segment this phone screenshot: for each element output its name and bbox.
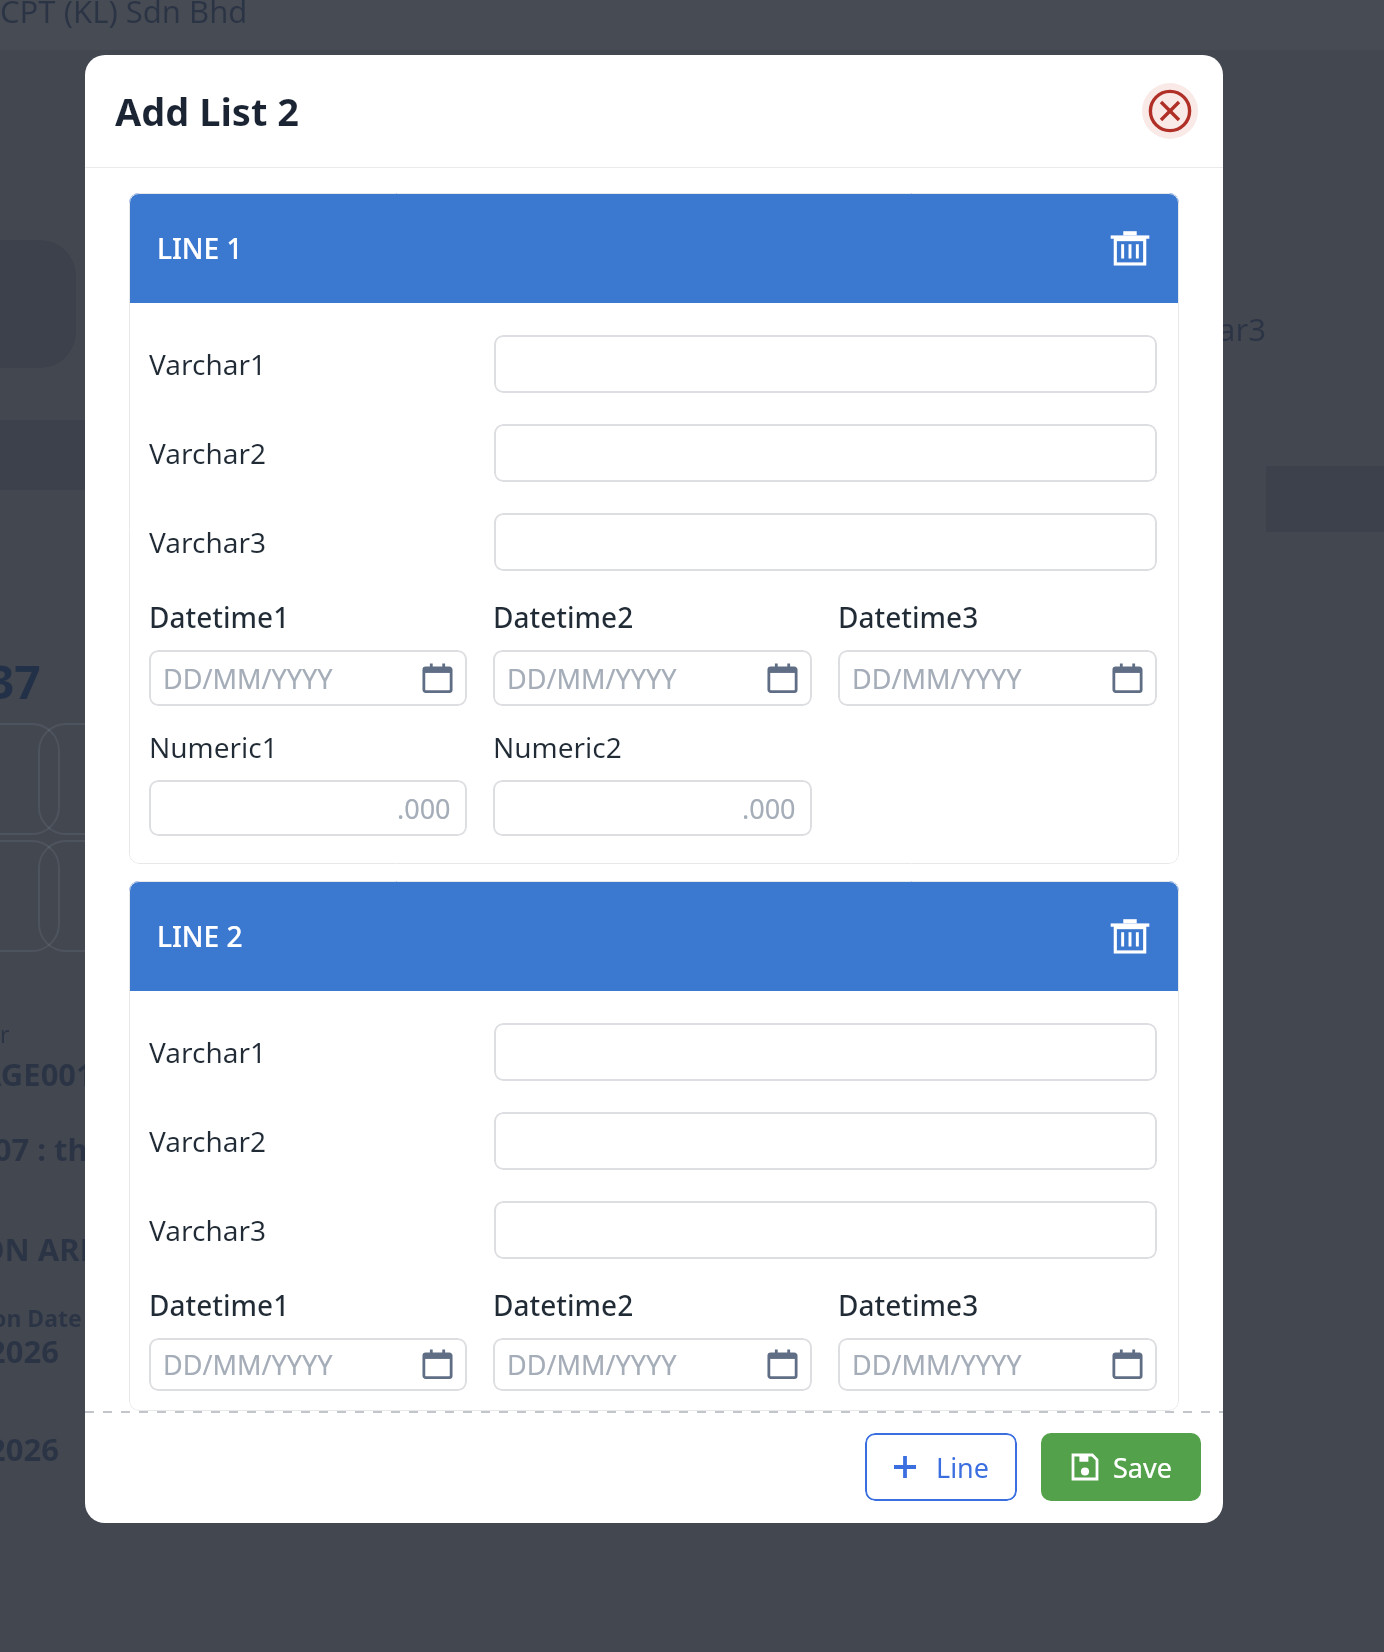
staticText: on Date xyxy=(0,1302,82,1333)
button[interactable] xyxy=(494,424,1157,482)
button[interactable]: DD/MM/YYYY xyxy=(493,650,812,706)
staticText: DD/MM/YYYY xyxy=(852,1346,1022,1383)
staticText: AGE001 xyxy=(0,1053,94,1095)
staticText: CPT (KL) Sdn Bhd xyxy=(0,0,248,32)
staticText: 2026 xyxy=(0,1330,59,1372)
staticText: DD/MM/YYYY xyxy=(507,660,677,697)
staticText: .000 xyxy=(742,790,796,827)
staticText: Save xyxy=(1113,1449,1172,1486)
button[interactable] xyxy=(494,1201,1157,1259)
staticText: Datetime3 xyxy=(838,598,979,636)
staticText: Line xyxy=(936,1449,990,1486)
button[interactable]: Close xyxy=(1142,83,1198,139)
button[interactable]: .000 xyxy=(493,780,812,836)
button[interactable]: Line xyxy=(865,1433,1017,1501)
staticText: DD/MM/YYYY xyxy=(507,1346,677,1383)
staticText: DD/MM/YYYY xyxy=(163,660,333,697)
button[interactable] xyxy=(494,1023,1157,1081)
staticText: r xyxy=(0,1018,10,1049)
staticText: Add List 2 xyxy=(115,85,299,137)
button[interactable]: Delete LINE 1 xyxy=(1109,227,1151,269)
staticText: Datetime1 xyxy=(149,1286,290,1324)
staticText: Varchar1 xyxy=(149,345,494,383)
staticText: DD/MM/YYYY xyxy=(163,1346,333,1383)
staticText: DD/MM/YYYY xyxy=(852,660,1022,697)
button[interactable]: DD/MM/YYYY xyxy=(838,650,1157,706)
staticText: Varchar1 xyxy=(149,1033,494,1071)
staticText: Numeric1 xyxy=(149,728,278,766)
staticText: Datetime3 xyxy=(838,1286,979,1324)
staticText: 37 xyxy=(0,650,41,713)
button[interactable] xyxy=(494,335,1157,393)
staticText: Numeric2 xyxy=(493,728,622,766)
button[interactable]: .000 xyxy=(149,780,467,836)
staticText: Datetime1 xyxy=(149,598,290,636)
staticText: Varchar2 xyxy=(149,1122,494,1160)
staticText: ar3 xyxy=(1218,308,1266,350)
button[interactable]: DD/MM/YYYY xyxy=(838,1338,1157,1391)
staticText: 007 : th xyxy=(0,1128,88,1170)
staticText: .000 xyxy=(397,790,451,827)
button[interactable]: DD/MM/YYYY xyxy=(149,1338,467,1391)
button[interactable]: DD/MM/YYYY xyxy=(493,1338,812,1391)
staticText: Varchar3 xyxy=(149,1211,494,1249)
button[interactable] xyxy=(494,513,1157,571)
staticText: LINE 1 xyxy=(157,229,243,267)
staticText: ON ARE xyxy=(0,1228,97,1270)
button[interactable]: DD/MM/YYYY xyxy=(149,650,467,706)
staticText: Varchar2 xyxy=(149,434,494,472)
staticText: Datetime2 xyxy=(493,598,634,636)
staticText: Datetime2 xyxy=(493,1286,634,1324)
button[interactable]: Save xyxy=(1041,1433,1201,1501)
button[interactable]: Delete LINE 2 xyxy=(1109,915,1151,957)
staticText: LINE 2 xyxy=(157,917,243,955)
button[interactable] xyxy=(494,1112,1157,1170)
staticText: Varchar3 xyxy=(149,523,494,561)
staticText: 2026 xyxy=(0,1428,59,1470)
